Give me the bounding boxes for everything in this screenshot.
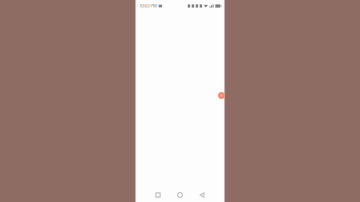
staticText: 10:03 PM [139,3,157,9]
button[interactable]: Home [169,189,191,201]
button[interactable]: Back [191,189,213,201]
button[interactable]: Compose [218,92,225,99]
button[interactable]: Recents [147,189,169,201]
